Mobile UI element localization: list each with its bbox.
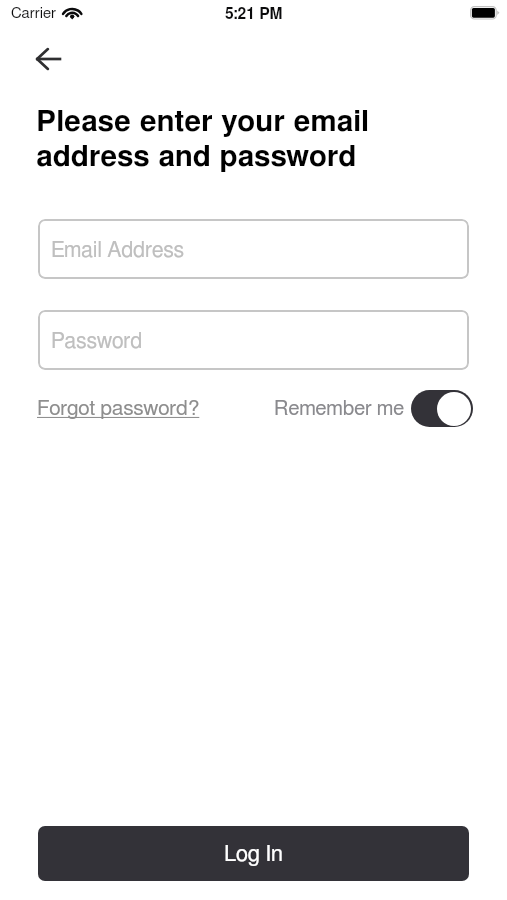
button[interactable]: Password bbox=[38, 310, 469, 370]
staticText: Remember me bbox=[274, 399, 405, 419]
staticText: Email Address bbox=[51, 240, 185, 261]
staticText: Carrier bbox=[11, 6, 56, 21]
other: Battery full bbox=[470, 6, 500, 20]
staticText: 5:21 PM bbox=[225, 7, 283, 23]
staticText: Log In bbox=[224, 843, 283, 865]
button[interactable]: Email Address bbox=[38, 219, 469, 279]
button[interactable]: Remember me, on bbox=[274, 390, 473, 427]
staticText: Forgot password? bbox=[37, 398, 200, 419]
staticText: Please enter your email address and pass… bbox=[36, 107, 369, 172]
other: Wi-Fi bbox=[61, 3, 84, 22]
button[interactable]: Log In bbox=[38, 826, 469, 881]
button[interactable]: Forgot password? bbox=[37, 396, 200, 421]
staticText: Password bbox=[51, 331, 143, 352]
button[interactable]: Back bbox=[26, 36, 71, 81]
